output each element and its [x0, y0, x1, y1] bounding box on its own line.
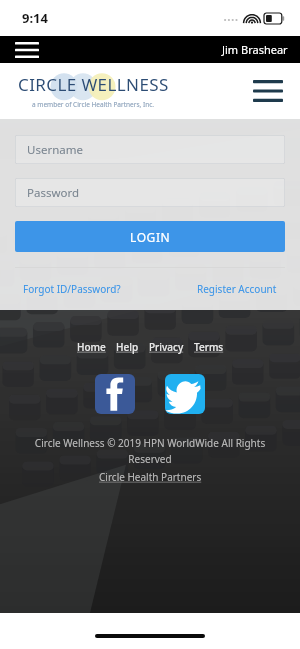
- button[interactable]: Home: [72, 338, 111, 356]
- button[interactable]: Register Account: [189, 279, 285, 299]
- staticText: Terms: [194, 340, 224, 354]
- button[interactable]: Terms: [189, 338, 229, 356]
- button[interactable]: Username: [15, 135, 285, 164]
- button[interactable]: Twitter: [165, 374, 205, 414]
- button[interactable]: Circle Health Partners: [95, 468, 206, 486]
- staticText: Privacy: [149, 340, 184, 354]
- staticText: Password: [27, 185, 80, 201]
- staticText: Circle Wellness © 2019 HPN WorldWide All…: [14, 436, 286, 466]
- staticText: CIRCLE WELLNESS: [18, 73, 169, 96]
- button[interactable]: Open navigation menu: [10, 36, 44, 63]
- staticText: Forgot ID/Password?: [23, 282, 121, 296]
- staticText: 9:14: [22, 9, 48, 27]
- button[interactable]: Menu: [250, 74, 286, 108]
- button[interactable]: LOGIN: [15, 221, 285, 252]
- button[interactable]: Forgot ID/Password?: [15, 279, 129, 299]
- button[interactable]: Password: [15, 178, 285, 207]
- staticText: Help: [116, 340, 139, 354]
- staticText: Circle Health Partners: [99, 470, 202, 484]
- button[interactable]: Privacy: [144, 338, 189, 356]
- button[interactable]: Help: [111, 338, 144, 356]
- staticText: LOGIN: [130, 229, 171, 245]
- staticText: Home: [77, 340, 106, 354]
- staticText: Username: [27, 142, 83, 158]
- staticText: a member of Circle Health Partners, Inc.: [32, 100, 155, 109]
- button[interactable]: Facebook: [95, 374, 135, 414]
- staticText: Register Account: [197, 282, 277, 296]
- button[interactable]: Jim Brashear: [222, 42, 288, 57]
